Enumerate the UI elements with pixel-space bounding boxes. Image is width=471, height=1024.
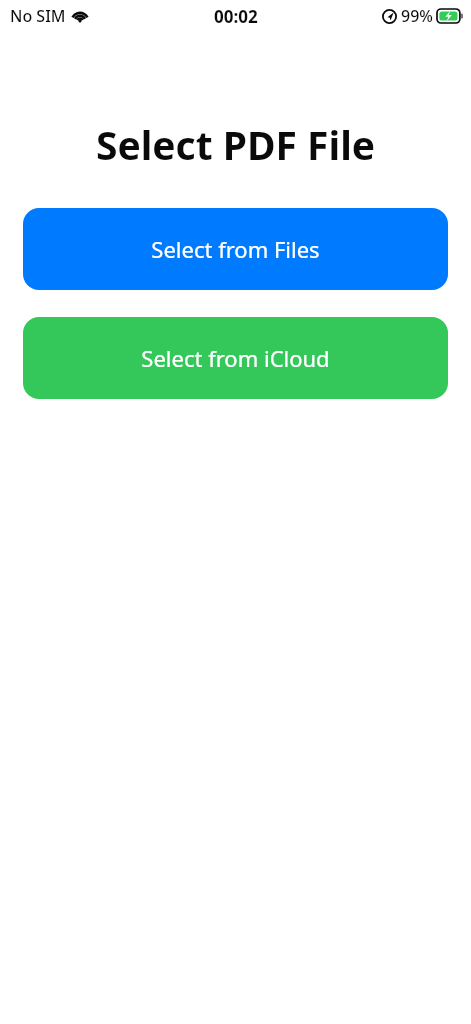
button[interactable]: Select from Files [23, 208, 448, 290]
staticText: 99% [401, 5, 433, 27]
button[interactable]: Select from iCloud [23, 317, 448, 399]
staticText: Select from iCloud [141, 343, 330, 373]
staticText: Select from Files [151, 234, 320, 264]
staticText: No SIM [10, 5, 66, 27]
staticText: Select PDF File [0, 118, 471, 171]
staticText: 00:02 [214, 5, 258, 28]
